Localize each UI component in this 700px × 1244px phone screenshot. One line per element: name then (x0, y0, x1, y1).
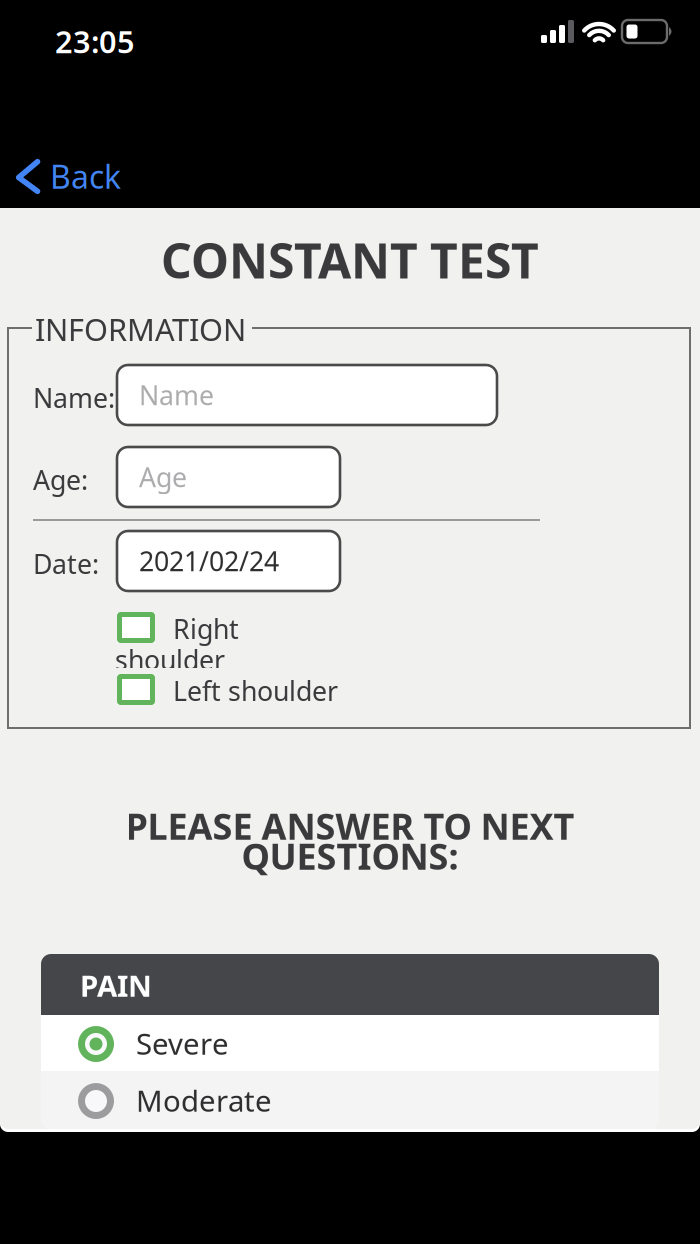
staticText: INFORMATION (35, 309, 246, 349)
button[interactable]: Left shoulder (115, 668, 405, 712)
button[interactable]: Severe (41, 1015, 659, 1071)
staticText: Left shoulder (173, 673, 338, 708)
staticText: Age (139, 459, 187, 495)
staticText: Severe (136, 1024, 229, 1063)
button[interactable]: Moderate (41, 1071, 659, 1129)
staticText: Date: (33, 546, 99, 581)
staticText: PLEASE ANSWER TO NEXT (125, 802, 574, 850)
staticText: PAIN (80, 966, 152, 1005)
staticText: QUESTIONS: (241, 832, 458, 880)
button[interactable]: Back (0, 146, 150, 208)
staticText: Name: (33, 380, 115, 415)
staticText: Right (173, 611, 239, 646)
staticText: 2021/02/24 (139, 543, 279, 579)
staticText: Moderate (136, 1081, 272, 1120)
staticText: shoulder (115, 642, 225, 677)
staticText: Name (139, 377, 214, 413)
staticText: CONSTANT TEST (161, 228, 539, 292)
staticText: Back (50, 155, 121, 197)
staticText: 23:05 (55, 21, 135, 62)
button[interactable]: Right (115, 606, 347, 668)
staticText: Age: (33, 462, 88, 497)
